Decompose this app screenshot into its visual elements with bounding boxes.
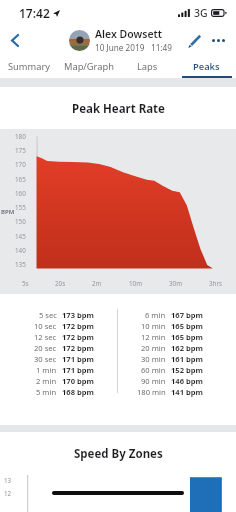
- staticText: 12 sec: [34, 332, 57, 342]
- staticText: BPM: [1, 208, 15, 216]
- staticText: 172 bpm: [62, 321, 95, 331]
- staticText: 145: [15, 232, 26, 241]
- staticText: 1 min: [36, 365, 57, 375]
- staticText: 10 sec: [34, 321, 57, 331]
- staticText: 10m: [129, 279, 143, 288]
- button[interactable]: Edit: [181, 28, 206, 53]
- staticText: 30m: [169, 279, 183, 288]
- staticText: 172 bpm: [62, 332, 95, 342]
- staticText: 135: [15, 260, 26, 269]
- staticText: 161 bpm: [171, 354, 204, 364]
- button[interactable]: Summary: [0, 55, 59, 78]
- staticText: 12 min: [141, 332, 166, 342]
- staticText: 150: [15, 217, 26, 226]
- staticText: 60 min: [141, 365, 166, 375]
- staticText: 165: [15, 175, 26, 184]
- staticText: 141 bpm: [171, 387, 204, 397]
- staticText: 152 bpm: [171, 365, 204, 375]
- staticText: 20s: [55, 279, 66, 288]
- staticText: 10 June 2019: [95, 42, 145, 53]
- staticText: 2 min: [36, 376, 57, 386]
- staticText: 171 bpm: [62, 354, 95, 364]
- staticText: 162 bpm: [171, 343, 204, 353]
- staticText: 13: [4, 476, 12, 485]
- staticText: 12: [4, 489, 12, 498]
- staticText: 5 min: [36, 387, 57, 397]
- staticText: 172 bpm: [62, 343, 95, 353]
- staticText: 140: [15, 246, 26, 255]
- staticText: 20 min: [141, 343, 166, 353]
- staticText: Summary: [8, 60, 51, 73]
- button[interactable]: Map/Graph: [59, 55, 118, 78]
- staticText: 170: [15, 160, 26, 169]
- staticText: Alex Dowsett: [95, 27, 163, 41]
- staticText: 146 bpm: [171, 376, 204, 386]
- staticText: 155: [15, 203, 26, 212]
- staticText: 180 min: [137, 387, 166, 397]
- staticText: 170 bpm: [62, 376, 95, 386]
- button[interactable]: Laps: [118, 55, 177, 78]
- button[interactable]: Back: [0, 25, 30, 55]
- staticText: 90 min: [141, 376, 166, 386]
- staticText: Peak Heart Rate: [72, 101, 165, 117]
- staticText: 5 sec: [39, 310, 57, 320]
- staticText: Laps: [137, 60, 158, 73]
- staticText: 165 bpm: [171, 321, 204, 331]
- button[interactable]: Peaks: [177, 55, 236, 78]
- staticText: 180: [15, 132, 26, 141]
- staticText: 160: [15, 189, 26, 198]
- staticText: 17:42: [19, 5, 50, 21]
- staticText: 5s: [22, 279, 29, 288]
- staticText: Speed By Zones: [74, 446, 163, 462]
- staticText: 167 bpm: [171, 310, 204, 320]
- staticText: 30 sec: [34, 354, 57, 364]
- staticText: 165 bpm: [171, 332, 204, 342]
- staticText: 3hrs: [209, 279, 223, 288]
- button[interactable]: More options: [206, 28, 231, 53]
- staticText: 173 bpm: [62, 310, 95, 320]
- staticText: 2m: [92, 279, 102, 288]
- staticText: 30 min: [141, 354, 166, 364]
- staticText: Peaks: [193, 60, 220, 73]
- staticText: 20 sec: [34, 343, 57, 353]
- staticText: Map/Graph: [64, 60, 114, 73]
- staticText: 10 min: [141, 321, 166, 331]
- staticText: 171 bpm: [62, 365, 95, 375]
- staticText: 6 min: [145, 310, 166, 320]
- staticText: 11:49: [151, 42, 172, 53]
- staticText: 168 bpm: [62, 387, 95, 397]
- staticText: 3G: [194, 6, 208, 20]
- staticText: 175: [15, 146, 26, 155]
